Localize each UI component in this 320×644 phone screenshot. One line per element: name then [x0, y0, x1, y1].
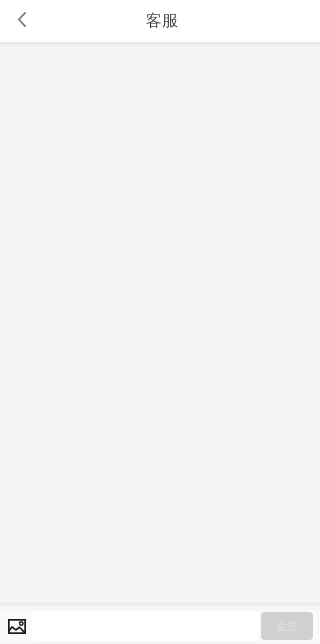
button[interactable]: Send image: [8, 610, 26, 642]
staticText: 客服: [146, 11, 178, 31]
button[interactable]: Back: [0, 0, 44, 42]
staticText: 发送: [276, 619, 298, 633]
button[interactable]: 发送: [261, 612, 313, 640]
